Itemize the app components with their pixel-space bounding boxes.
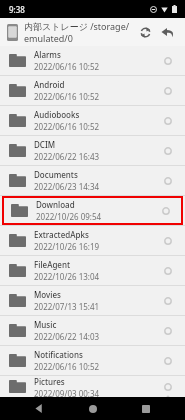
button[interactable]: Back (25, 397, 53, 420)
button[interactable]: Music (0, 316, 185, 345)
staticText: Music (34, 319, 57, 330)
button[interactable]: Recents (132, 397, 160, 420)
staticText: Pictures (34, 376, 65, 387)
staticText: 2022/06/22 16:43 (34, 151, 100, 162)
staticText: 2022/10/26 09:54 (36, 211, 102, 222)
staticText: Audiobooks (34, 109, 80, 120)
button[interactable]: Select Android (160, 83, 176, 99)
button[interactable]: Select Movies (160, 293, 176, 309)
button[interactable]: Documents (0, 166, 185, 195)
staticText: ExtractedApks (34, 229, 89, 240)
button[interactable]: Download (0, 196, 185, 225)
staticText: Documents (34, 169, 78, 180)
staticText: 2022/06/16 10:52 (34, 61, 100, 72)
button[interactable]: Select Documents (160, 173, 176, 189)
staticText: emulated/0 (24, 32, 73, 44)
staticText: Download (36, 199, 75, 210)
button[interactable]: Select Alarms (160, 53, 176, 69)
staticText: Alarms (34, 49, 61, 60)
button[interactable]: Select Pictures (160, 379, 176, 395)
button[interactable]: Pictures (0, 376, 185, 397)
button[interactable]: Notifications (0, 346, 185, 375)
button[interactable]: Select Notifications (160, 353, 176, 369)
staticText: 2022/06/16 10:52 (34, 121, 100, 132)
button[interactable]: Alarms (0, 46, 185, 75)
staticText: 9:38 (9, 4, 25, 15)
staticText: FileAgent (34, 259, 71, 270)
staticText: 2022/06/22 14:03 (34, 331, 100, 342)
staticText: Notifications (34, 349, 83, 360)
button[interactable]: Select DCIM (160, 143, 176, 159)
staticText: 2022/10/26 13:04 (34, 271, 100, 282)
button[interactable]: Android (0, 76, 185, 105)
button[interactable]: Select Audiobooks (160, 113, 176, 129)
staticText: 2022/09/03 00:34 (34, 388, 100, 397)
button[interactable]: Back (156, 21, 178, 43)
staticText: 2022/06/16 10:52 (34, 91, 100, 102)
button[interactable]: Home (79, 397, 107, 420)
staticText: 2022/07/13 15:41 (34, 301, 100, 312)
button[interactable]: DCIM (0, 136, 185, 165)
button[interactable]: FileAgent (0, 256, 185, 285)
button[interactable]: Select ExtractedApks (160, 233, 176, 249)
staticText: 内部ストレージ /storage/ (24, 20, 130, 32)
staticText: 2022/06/23 14:34 (34, 181, 100, 192)
staticText: 2022/10/26 16:19 (34, 241, 100, 252)
button[interactable]: ExtractedApks (0, 226, 185, 255)
button[interactable]: Select FileAgent (160, 263, 176, 279)
button[interactable]: Select Download (158, 203, 174, 219)
button[interactable]: Audiobooks (0, 106, 185, 135)
button[interactable]: Select Music (160, 323, 176, 339)
staticText: Android (34, 79, 65, 90)
staticText: DCIM (34, 139, 56, 150)
staticText: Movies (34, 289, 61, 300)
staticText: 2022/06/16 10:52 (34, 361, 100, 372)
button[interactable]: Refresh (134, 21, 156, 43)
button[interactable]: Movies (0, 286, 185, 315)
